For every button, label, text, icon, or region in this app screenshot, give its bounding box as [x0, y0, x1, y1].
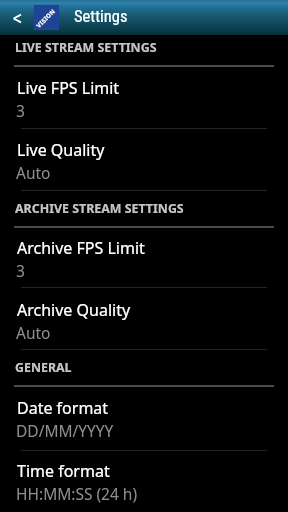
button[interactable]: Archive Quality [0, 292, 288, 338]
staticText: Settings [74, 7, 128, 26]
staticText: LIVE STREAM SETTINGS [15, 39, 157, 56]
button[interactable]: Time format [0, 453, 288, 499]
staticText: DD/MM/YYYY [16, 420, 114, 441]
staticText: 3 [16, 100, 25, 121]
button[interactable]: Date format [0, 390, 288, 436]
staticText: Auto [16, 322, 51, 343]
staticText: Live Quality [17, 139, 105, 161]
button[interactable]: Live Quality [0, 132, 288, 178]
button[interactable]: Archive FPS Limit [0, 230, 288, 276]
staticText: GENERAL [15, 359, 72, 376]
button[interactable]: Live FPS Limit [0, 70, 288, 116]
button[interactable]: Back [0, 0, 32, 35]
staticText: Time format [17, 460, 110, 482]
staticText: VISION·Q [35, 6, 58, 30]
staticText: Date format [17, 397, 109, 419]
staticText: Auto [16, 162, 51, 183]
staticText: 3 [16, 260, 25, 281]
staticText: Archive Quality [17, 299, 131, 321]
staticText: ARCHIVE STREAM SETTINGS [15, 200, 184, 217]
staticText: HH:MM:SS (24 h) [16, 483, 138, 504]
staticText: Live FPS Limit [17, 77, 120, 99]
staticText: Archive FPS Limit [17, 237, 145, 259]
